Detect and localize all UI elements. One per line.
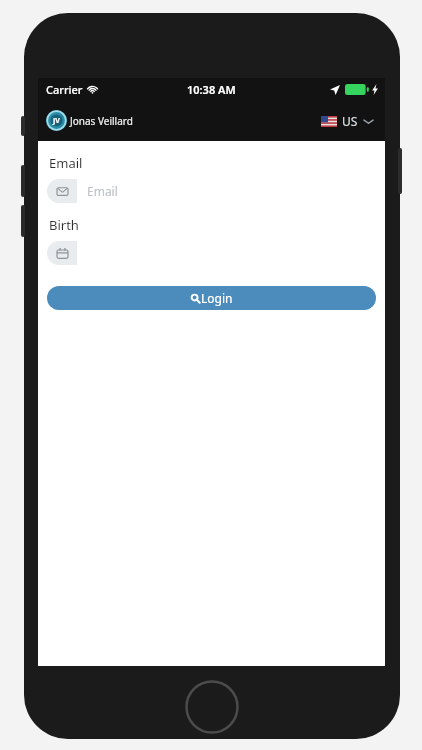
staticText: US (342, 113, 358, 129)
staticText: Jonas Veillard (70, 114, 133, 128)
staticText: JV (53, 116, 60, 126)
staticText: 10:38 AM (187, 82, 236, 97)
button[interactable]: Email (47, 179, 376, 203)
button[interactable]: Login (47, 286, 376, 310)
staticText: Login (201, 290, 233, 306)
button[interactable]: Select country (321, 113, 373, 129)
staticText: Birth (49, 216, 79, 234)
other: Select country (321, 116, 337, 127)
staticText: Email (49, 154, 83, 172)
staticText: Email (87, 183, 118, 199)
staticText: Carrier (46, 82, 83, 97)
button[interactable]: JV (46, 110, 133, 131)
button[interactable] (47, 241, 376, 265)
